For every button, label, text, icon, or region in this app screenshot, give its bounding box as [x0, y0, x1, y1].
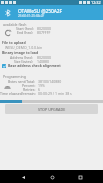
staticText: Percent:	[22, 83, 36, 87]
staticText: Time elapsed/remain:	[0, 91, 36, 95]
staticText: OTAWeSU @250A2F	[18, 8, 63, 15]
staticText: 19%	[38, 83, 45, 87]
staticText: 807FFFF	[37, 30, 51, 34]
button[interactable]: Back	[17, 171, 29, 183]
button[interactable]: Home	[46, 171, 58, 183]
staticText: Size (bytes):	[14, 59, 34, 63]
staticText: File to upload	[2, 40, 26, 45]
staticText: Retries:	[23, 87, 36, 91]
staticText: STOP UPGRADE	[38, 107, 66, 112]
button[interactable]: Base address check alignment	[2, 63, 61, 68]
staticText: Base address check alignment	[8, 63, 61, 68]
staticText: 00:00:29 / 1 min 38 s	[38, 91, 72, 95]
staticText: Programming	[3, 74, 26, 79]
staticText: 12:32	[91, 0, 101, 5]
staticText: Start (hex):	[16, 26, 34, 30]
staticText: WESU_DEMO_1.0.0.bin	[5, 45, 43, 50]
staticText: 140880	[37, 59, 50, 63]
button[interactable]: STOP UPGRADE	[5, 104, 98, 114]
button[interactable]: Recent apps	[74, 171, 86, 183]
staticText: Bytes sent/Total:	[8, 79, 36, 83]
staticText: available flash	[3, 22, 27, 27]
staticText: 26:60:E1:25:8A:2F	[18, 14, 45, 18]
button[interactable]: Bluetooth device	[4, 9, 12, 17]
staticText: Address (hex):	[10, 55, 34, 59]
staticText: Binary image to load	[2, 50, 39, 55]
staticText: 6	[38, 87, 41, 91]
staticText: End (hex):	[17, 30, 34, 34]
staticText: 8020000	[37, 26, 52, 30]
staticText: 8020000	[37, 55, 52, 59]
staticText: 38100/140880	[38, 79, 62, 83]
